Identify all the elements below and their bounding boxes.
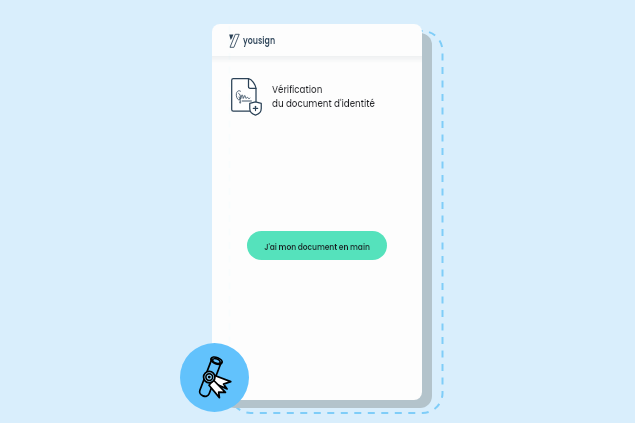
- staticText: du document d'identité: [272, 96, 375, 110]
- staticText: Vérification: [272, 82, 323, 96]
- button[interactable]: J'ai mon document en main: [247, 231, 387, 260]
- staticText: yousign: [243, 33, 275, 47]
- staticText: J'ai mon document en main: [264, 241, 370, 254]
- button[interactable]: Certificate: [180, 343, 249, 412]
- button[interactable]: yousign: [229, 33, 284, 48]
